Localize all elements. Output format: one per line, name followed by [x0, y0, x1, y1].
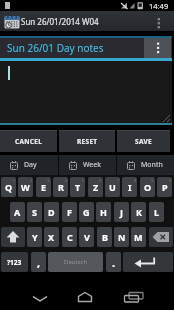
staticText: S — [32, 206, 37, 218]
button[interactable]: P — [157, 177, 172, 197]
staticText: M — [134, 231, 143, 243]
staticText: K — [136, 206, 142, 218]
staticText: 6 — [99, 178, 102, 183]
button[interactable]: Y — [27, 227, 42, 247]
button[interactable]: I — [122, 177, 137, 197]
button[interactable]: . — [106, 252, 121, 272]
button[interactable]: CANCEL — [0, 130, 57, 152]
button[interactable]: G — [79, 202, 94, 222]
staticText: Q — [5, 181, 13, 193]
staticText: Deutsch — [64, 258, 88, 266]
button[interactable]: D — [44, 202, 59, 222]
button[interactable]: B — [97, 227, 112, 247]
button[interactable] — [149, 227, 173, 247]
staticText: T — [75, 181, 81, 193]
staticText: N — [118, 231, 126, 243]
staticText: Y — [32, 231, 38, 243]
staticText: J — [120, 206, 123, 218]
button[interactable]: U — [105, 177, 120, 197]
button[interactable] — [0, 38, 172, 58]
staticText: C — [67, 231, 73, 243]
staticText: Z — [93, 181, 99, 193]
staticText: V — [84, 231, 90, 243]
staticText: RESET — [77, 137, 98, 146]
button[interactable]: Month — [117, 155, 174, 175]
button[interactable] — [0, 61, 172, 123]
staticText: G — [83, 206, 90, 218]
button[interactable]: K — [131, 202, 146, 222]
button[interactable] — [71, 288, 99, 308]
button[interactable]: M — [131, 227, 146, 247]
button[interactable]: Week — [59, 155, 117, 175]
button[interactable]: Deutsch — [48, 252, 103, 272]
staticText: I — [128, 181, 132, 193]
staticText: U — [109, 181, 116, 193]
button[interactable]: SAVE — [117, 130, 170, 152]
staticText: 4 — [65, 178, 68, 183]
staticText: W — [21, 181, 30, 193]
staticText: X — [48, 231, 55, 243]
staticText: . — [112, 255, 116, 270]
staticText: Sun 26/01/2014 W04 — [21, 16, 99, 27]
button[interactable]: H — [96, 202, 111, 222]
button[interactable]: J — [114, 202, 129, 222]
button[interactable]: L — [149, 202, 164, 222]
staticText: Week — [83, 160, 102, 170]
staticText: 0 — [169, 178, 172, 183]
staticText: O — [144, 181, 152, 193]
button[interactable]: ?123 — [1, 252, 28, 272]
staticText: Sun 26/01 Day notes — [7, 41, 104, 55]
button[interactable] — [144, 38, 171, 58]
button[interactable]: RESET — [59, 130, 115, 152]
button[interactable]: , — [31, 252, 46, 272]
staticText: H — [100, 206, 107, 218]
staticText: 3 — [47, 178, 50, 183]
button[interactable]: T — [70, 177, 85, 197]
staticText: 8 — [134, 178, 137, 183]
staticText: 7 — [117, 178, 120, 183]
button[interactable]: S — [27, 202, 42, 222]
staticText: E — [41, 181, 47, 193]
button[interactable]: F — [62, 202, 77, 222]
button[interactable]: Q — [1, 177, 16, 197]
staticText: , — [37, 255, 41, 270]
button[interactable]: Z — [88, 177, 103, 197]
staticText: B — [102, 231, 108, 243]
staticText: SAVE — [135, 137, 152, 146]
button[interactable]: O — [140, 177, 155, 197]
staticText: F — [67, 206, 72, 218]
staticText: CANCEL — [15, 137, 43, 146]
staticText: D — [48, 206, 55, 218]
staticText: P — [162, 181, 168, 193]
button[interactable]: R — [53, 177, 68, 197]
staticText: 9 — [151, 178, 154, 183]
button[interactable]: C — [62, 227, 77, 247]
button[interactable] — [0, 11, 174, 31]
button[interactable] — [26, 288, 54, 308]
staticText: 1 — [13, 178, 16, 183]
button[interactable] — [123, 252, 173, 272]
staticText: Day — [24, 160, 37, 170]
button[interactable]: W — [18, 177, 33, 197]
button[interactable]: A — [10, 202, 25, 222]
staticText: ?123 — [7, 258, 22, 267]
button[interactable] — [154, 17, 164, 31]
staticText: R — [58, 181, 64, 193]
button[interactable]: N — [114, 227, 129, 247]
staticText: 14:49 — [149, 1, 169, 11]
staticText: 2 — [30, 178, 33, 183]
staticText: A — [14, 206, 21, 218]
staticText: Month — [141, 160, 163, 170]
button[interactable]: E — [36, 177, 51, 197]
button[interactable]: Day — [0, 155, 58, 175]
button[interactable]: V — [79, 227, 94, 247]
staticText: 5 — [82, 178, 85, 183]
button[interactable] — [117, 288, 145, 308]
button[interactable] — [1, 227, 25, 247]
staticText: L — [154, 206, 160, 218]
button[interactable]: X — [44, 227, 59, 247]
